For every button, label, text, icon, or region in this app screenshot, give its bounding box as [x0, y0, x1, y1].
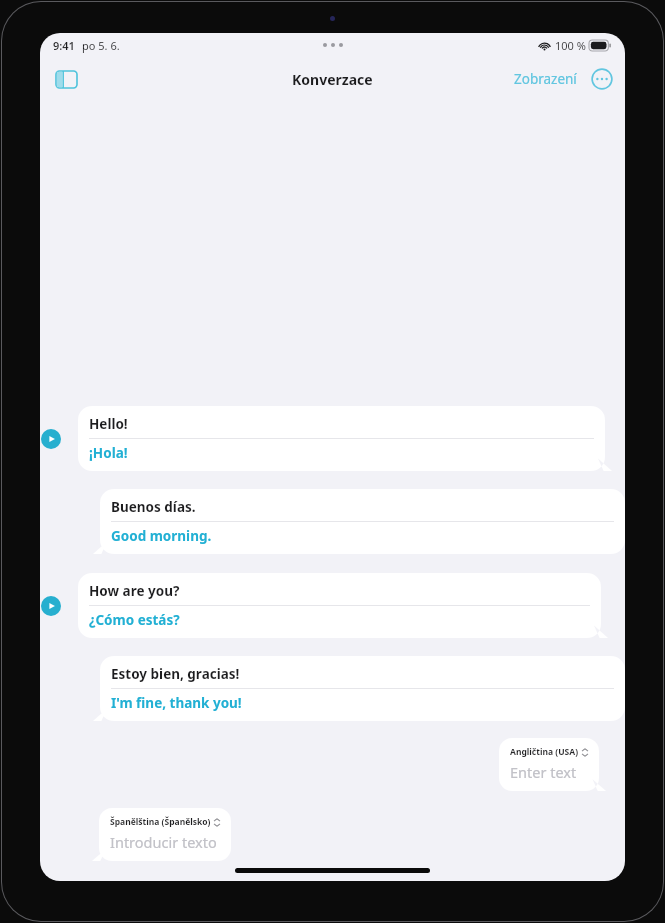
button[interactable]: Hello!: [78, 406, 612, 471]
staticText: 9:41: [53, 38, 75, 53]
button[interactable]: Zobrazení: [510, 64, 581, 94]
staticText: Zobrazení: [514, 70, 577, 88]
staticText: Buenos días.: [111, 498, 196, 516]
button[interactable]: Play translation: [40, 595, 62, 617]
staticText: 100 %: [555, 38, 586, 53]
staticText: ¡Hola!: [89, 444, 128, 462]
staticText: Španělština (Španělsko): [110, 816, 211, 828]
button[interactable]: Angličtina (USA): [499, 738, 606, 791]
staticText: Hello!: [89, 415, 128, 433]
staticText: ¿Cómo estás?: [89, 611, 180, 629]
staticText: Angličtina (USA): [510, 746, 579, 758]
button[interactable]: Show sidebar: [48, 61, 84, 97]
button[interactable]: Španělština (Španělsko): [92, 808, 231, 861]
staticText: po 5. 6.: [82, 38, 120, 53]
staticText: Introducir texto: [110, 832, 217, 852]
staticText: Enter text: [510, 762, 577, 782]
button[interactable]: Estoy bien, gracias!: [93, 656, 625, 721]
button[interactable]: More options: [589, 66, 615, 92]
staticText: Konverzace: [292, 70, 373, 89]
button[interactable]: Play translation: [40, 428, 62, 450]
staticText: Good morning.: [111, 527, 212, 545]
button[interactable]: How are you?: [78, 573, 608, 638]
staticText: I'm fine, thank you!: [111, 694, 242, 712]
staticText: Estoy bien, gracias!: [111, 665, 240, 683]
button[interactable]: Buenos días.: [93, 489, 625, 554]
staticText: How are you?: [89, 582, 180, 600]
